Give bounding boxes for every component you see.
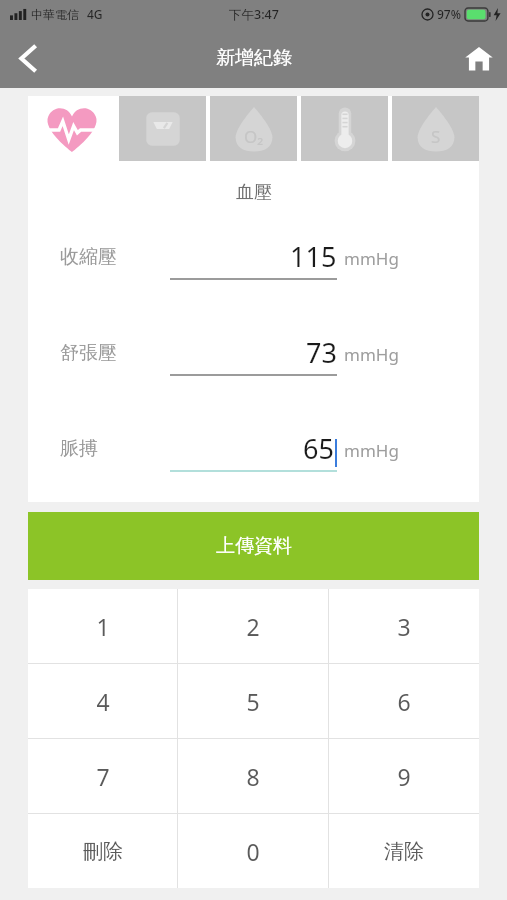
staticText: 1 (96, 611, 110, 642)
button[interactable]: 8 (178, 739, 328, 813)
staticText: mmHg (344, 247, 399, 270)
button[interactable]: 4 (28, 664, 177, 738)
staticText: 97% (437, 6, 461, 22)
staticText: O₂ (244, 125, 264, 148)
staticText: 新增紀錄 (216, 46, 292, 70)
button[interactable]: 2 (178, 589, 328, 663)
staticText: 收縮壓 (60, 245, 117, 269)
staticText: 8 (246, 761, 260, 792)
button[interactable]: 0 (178, 814, 328, 888)
button[interactable]: 3 (329, 589, 479, 663)
staticText: 血壓 (236, 181, 272, 204)
staticText: 7 (96, 761, 110, 792)
button[interactable]: Measurement type (301, 96, 388, 161)
staticText: 4G (87, 6, 103, 22)
staticText: 115 (290, 238, 337, 275)
staticText: S (431, 125, 441, 148)
staticText: 9 (397, 761, 411, 792)
staticText: 舒張壓 (60, 341, 117, 365)
staticText: 6 (397, 686, 411, 717)
button[interactable]: Measurement type (392, 96, 479, 161)
staticText: 上傳資料 (216, 534, 292, 558)
button[interactable]: 上傳資料 (28, 512, 479, 580)
staticText: 2 (246, 611, 260, 642)
button[interactable]: 1 (28, 589, 177, 663)
button[interactable]: Blood pressure (28, 96, 115, 161)
staticText: mmHg (344, 343, 399, 366)
button[interactable]: 73 (170, 330, 337, 376)
button[interactable]: Home (451, 30, 507, 86)
staticText: 脈搏 (60, 437, 98, 461)
staticText: 下午3:47 (229, 6, 279, 23)
button[interactable]: 5 (178, 664, 328, 738)
staticText: 清除 (384, 839, 424, 864)
staticText: mmHg (344, 439, 399, 462)
button[interactable]: 刪除 (28, 814, 177, 888)
button[interactable]: Back (0, 30, 56, 86)
button[interactable]: 9 (329, 739, 479, 813)
button[interactable]: 7 (28, 739, 177, 813)
button[interactable]: Measurement type (210, 96, 297, 161)
button[interactable]: 6 (329, 664, 479, 738)
button[interactable]: 65 (170, 426, 337, 472)
staticText: 73 (306, 334, 337, 371)
staticText: 5 (246, 686, 260, 717)
staticText: 刪除 (83, 839, 123, 864)
staticText: 65 (303, 430, 334, 467)
staticText: 4 (96, 686, 110, 717)
button[interactable]: 清除 (329, 814, 479, 888)
staticText: 3 (397, 611, 411, 642)
button[interactable]: 115 (170, 234, 337, 280)
staticText: 0 (246, 836, 260, 867)
button[interactable]: Measurement type (119, 96, 206, 161)
staticText: 中華電信 (31, 7, 79, 22)
